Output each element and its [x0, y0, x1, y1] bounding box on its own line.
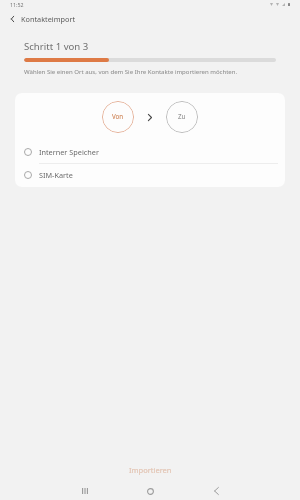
staticText: SIM-Karte [39, 170, 73, 180]
staticText: Zu [178, 112, 186, 120]
button[interactable]: Startbildschirm [135, 481, 165, 500]
staticText: Schritt 1 von 3 [24, 40, 89, 53]
button[interactable]: SIM-Karte [15, 163, 285, 186]
button[interactable]: Letzte Apps [70, 481, 100, 500]
button[interactable]: Zurück [201, 481, 231, 500]
staticText: Von [112, 112, 124, 120]
staticText: Interner Speicher [39, 147, 99, 157]
button[interactable]: Von [102, 101, 134, 133]
staticText: 11:52 [10, 1, 24, 8]
button[interactable]: Importieren [109, 460, 192, 480]
button[interactable]: Zurück [3, 10, 21, 28]
staticText: Wählen Sie einen Ort aus, von dem Sie Ih… [24, 68, 274, 76]
button[interactable]: Interner Speicher [15, 140, 285, 163]
staticText: Kontakteimport [21, 14, 76, 24]
button[interactable]: Zu [166, 101, 198, 133]
